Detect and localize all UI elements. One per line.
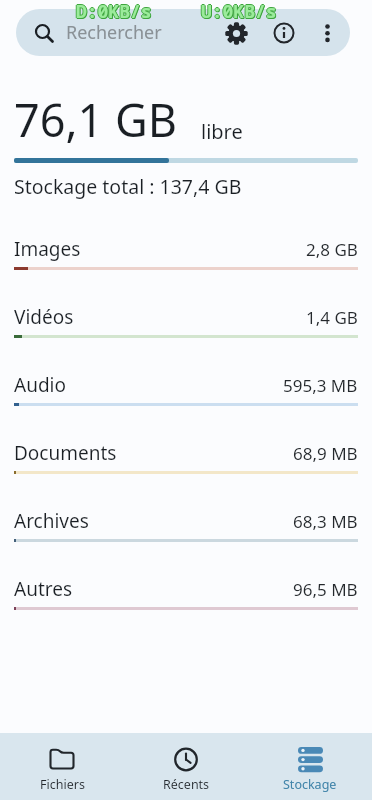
button[interactable]: Audio: [0, 362, 372, 430]
staticText: 595,3 MB: [283, 374, 358, 397]
staticText: D:0KB/s: [76, 0, 152, 25]
staticText: 68,3 MB: [293, 510, 358, 533]
button[interactable]: [309, 15, 345, 51]
staticText: Récents: [163, 776, 210, 793]
button[interactable]: Documents: [0, 430, 372, 498]
staticText: 96,5 MB: [293, 578, 358, 601]
staticText: U:0KB/s: [201, 0, 277, 25]
button[interactable]: Autres: [0, 566, 372, 634]
staticText: D:0KB/s: [76, 0, 152, 23]
staticText: U:0KB/s: [201, 0, 277, 23]
button[interactable]: Stockage: [248, 733, 372, 800]
staticText: U:0KB/s: [201, 0, 277, 24]
button[interactable]: Rechercher: [16, 9, 350, 56]
staticText: D:0KB/s: [75, 0, 151, 24]
staticText: Documents: [14, 440, 293, 466]
staticText: Stockage: [283, 776, 337, 793]
button[interactable]: Fichiers: [0, 733, 124, 800]
staticText: Rechercher: [66, 20, 216, 45]
staticText: Audio: [14, 372, 283, 398]
button[interactable]: Vidéos: [0, 294, 372, 362]
staticText: libre: [201, 118, 243, 145]
staticText: 68,9 MB: [293, 442, 358, 465]
staticText: Vidéos: [14, 304, 306, 330]
button[interactable]: Archives: [0, 498, 372, 566]
button[interactable]: Images: [0, 226, 372, 294]
button[interactable]: [264, 13, 304, 53]
button[interactable]: Récents: [124, 733, 248, 800]
staticText: Stockage total : 137,4 GB: [14, 173, 242, 200]
staticText: 2,8 GB: [306, 238, 358, 261]
staticText: 1,4 GB: [306, 306, 358, 329]
staticText: 76,1 GB: [14, 89, 177, 150]
staticText: U:0KB/s: [200, 0, 276, 24]
staticText: U:0KB/s: [202, 0, 278, 25]
staticText: D:0KB/s: [76, 0, 152, 24]
staticText: Archives: [14, 508, 293, 534]
staticText: Fichiers: [40, 776, 85, 793]
staticText: Autres: [14, 576, 293, 602]
button[interactable]: [216, 13, 256, 53]
staticText: D:0KB/s: [77, 0, 153, 24]
staticText: Images: [14, 236, 306, 262]
staticText: U:0KB/s: [202, 0, 278, 24]
staticText: D:0KB/s: [77, 0, 153, 25]
